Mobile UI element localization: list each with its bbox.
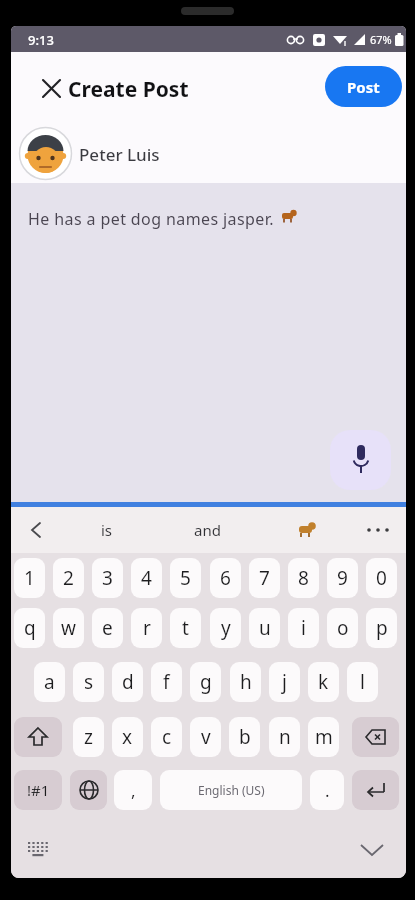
staticText: r <box>143 615 151 641</box>
button[interactable]: s <box>73 662 104 702</box>
button[interactable]: h <box>230 662 261 702</box>
button[interactable]: x <box>112 717 143 757</box>
staticText: 0 <box>376 565 387 591</box>
staticText: !#1 <box>27 780 50 800</box>
staticText: 1 <box>24 565 35 591</box>
staticText: English (US) <box>198 782 265 798</box>
staticText: n <box>279 724 291 750</box>
staticText: u <box>259 615 271 641</box>
staticText: z <box>84 724 93 750</box>
staticText: 7 <box>259 565 270 591</box>
button[interactable] <box>366 527 392 533</box>
button[interactable] <box>29 522 43 538</box>
button[interactable]: o <box>327 608 358 648</box>
staticText: q <box>24 615 36 641</box>
staticText: 4 <box>141 565 152 591</box>
staticText: k <box>318 669 329 695</box>
staticText: x <box>122 724 133 750</box>
button[interactable]: p <box>366 608 397 648</box>
staticText: 9 <box>337 565 348 591</box>
staticText: t <box>182 615 189 641</box>
button[interactable]: 3 <box>92 558 123 598</box>
button[interactable]: 0 <box>366 558 397 598</box>
staticText: o <box>337 615 349 641</box>
button[interactable]: 4 <box>131 558 162 598</box>
staticText: i <box>301 615 306 641</box>
button[interactable]: Post <box>325 66 402 107</box>
staticText: e <box>102 615 113 641</box>
staticText: 8 <box>298 565 309 591</box>
staticText: s <box>84 669 94 695</box>
staticText: d <box>122 669 134 695</box>
button[interactable] <box>35 72 67 104</box>
staticText: h <box>240 669 252 695</box>
staticText: m <box>315 724 333 750</box>
button[interactable]: b <box>229 717 260 757</box>
button[interactable]: r <box>131 608 162 648</box>
button[interactable]: 7 <box>249 558 280 598</box>
button[interactable]: t <box>170 608 201 648</box>
button[interactable]: is <box>62 507 152 553</box>
button[interactable]: l <box>347 662 378 702</box>
button[interactable]: English (US) <box>160 770 302 810</box>
button[interactable] <box>28 842 50 858</box>
button[interactable]: 8 <box>288 558 319 598</box>
button[interactable]: v <box>190 717 221 757</box>
button[interactable]: . <box>310 770 344 810</box>
button[interactable]: , <box>114 770 152 810</box>
staticText: 67% <box>370 32 392 47</box>
button[interactable]: y <box>210 608 241 648</box>
button[interactable] <box>360 844 384 857</box>
button[interactable]: 6 <box>210 558 241 598</box>
staticText: 9:13 <box>28 31 54 49</box>
button[interactable]: g <box>190 662 221 702</box>
staticText: p <box>376 615 388 641</box>
staticText: f <box>163 669 170 695</box>
staticText: is <box>101 520 113 540</box>
button[interactable]: m <box>308 717 339 757</box>
button[interactable] <box>352 717 399 757</box>
button[interactable]: c <box>151 717 182 757</box>
staticText: b <box>239 724 251 750</box>
button[interactable]: !#1 <box>14 770 62 810</box>
button[interactable]: 1 <box>14 558 45 598</box>
button[interactable] <box>14 717 62 757</box>
button[interactable] <box>352 770 399 810</box>
button[interactable]: 5 <box>170 558 201 598</box>
button[interactable] <box>330 430 391 490</box>
staticText: c <box>162 724 172 750</box>
button[interactable]: a <box>34 662 65 702</box>
button[interactable]: w <box>53 608 84 648</box>
button[interactable]: f <box>151 662 182 702</box>
button[interactable]: j <box>269 662 300 702</box>
staticText: w <box>61 615 76 641</box>
staticText: 6 <box>220 565 231 591</box>
staticText: 2 <box>63 565 74 591</box>
button[interactable]: 2 <box>53 558 84 598</box>
button[interactable]: q <box>14 608 45 648</box>
button[interactable]: and <box>162 507 252 553</box>
staticText: y <box>221 615 231 641</box>
staticText: Post <box>347 77 380 97</box>
staticText: . <box>325 779 330 802</box>
button[interactable]: z <box>73 717 104 757</box>
button[interactable]: k <box>308 662 339 702</box>
staticText: 3 <box>102 565 113 591</box>
staticText: 5 <box>180 565 191 591</box>
staticText: l <box>360 669 365 695</box>
button[interactable]: n <box>269 717 300 757</box>
staticText: v <box>201 724 211 750</box>
staticText: He has a pet dog names jasper. <box>28 208 274 230</box>
button[interactable] <box>70 770 107 810</box>
button[interactable]: 9 <box>327 558 358 598</box>
staticText: g <box>200 669 212 695</box>
button[interactable]: d <box>112 662 143 702</box>
staticText: j <box>282 669 287 695</box>
button[interactable]: e <box>92 608 123 648</box>
button[interactable]: u <box>249 608 280 648</box>
button[interactable]: i <box>288 608 319 648</box>
staticText: Peter Luis <box>79 143 160 166</box>
staticText: , <box>131 779 136 802</box>
staticText: a <box>44 669 55 695</box>
staticText: and <box>194 520 221 540</box>
